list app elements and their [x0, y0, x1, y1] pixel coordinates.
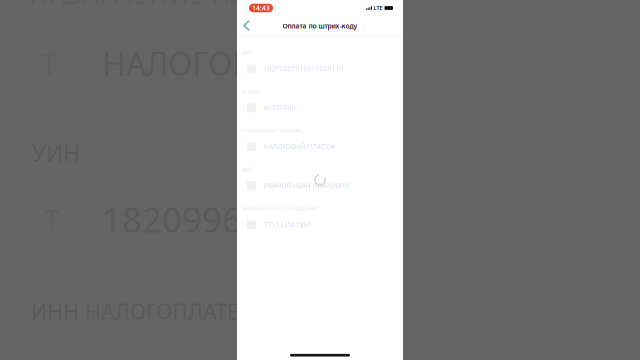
staticText: LTE: [373, 4, 382, 12]
staticText: ФИО: [241, 166, 253, 173]
staticText: ИНН НАЛОГОПЛАТЕЛЬ: [31, 297, 267, 325]
staticText: 14:43: [252, 4, 270, 12]
button[interactable]: Back: [237, 17, 263, 35]
staticText: 40300000 .: [263, 103, 299, 112]
staticText: НАЛОГОВЫ: [102, 42, 280, 84]
staticText: ЗАТЕМ?: [241, 88, 260, 95]
staticText: ИВАНОВ ИВАН ИВАНОВИЧ: [263, 181, 348, 190]
staticText: УИН: [32, 138, 80, 168]
staticText: НАЗНАЧЕНИЕ ПЛАТЕЖА: [241, 127, 302, 134]
staticText: 771234567890: [263, 220, 311, 229]
staticText: УИН: [241, 49, 252, 56]
staticText: НАЗНАЧЕНИЕ ПЛАТЕЖА: [29, 0, 336, 12]
staticText: Оплата по штрих-коду: [282, 22, 357, 30]
staticText: 18209965: [102, 196, 262, 242]
staticText: ИНН НАЛОГОПЛАТЕЛЬЩИКА: [241, 205, 316, 212]
staticText: НАЛОГОВЫЙ ПЛАТЕЖ: [263, 142, 335, 151]
staticText: 18210807010011000110: [263, 64, 343, 73]
